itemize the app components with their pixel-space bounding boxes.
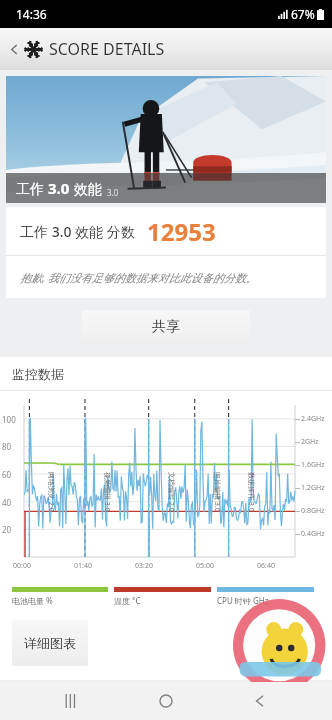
staticText: 效能	[70, 179, 102, 198]
button[interactable]: Home	[144, 682, 188, 720]
button[interactable]: 工作	[6, 76, 326, 203]
button[interactable]: 共享	[82, 310, 250, 343]
staticText: 20	[2, 524, 12, 535]
staticText: 抱歉, 我们没有足够的数据来对比此设备的分数。	[20, 270, 257, 285]
staticText: 数据操作 3.0	[246, 472, 256, 512]
staticText: 00:00	[13, 561, 31, 571]
staticText: 100	[2, 414, 16, 425]
staticText: 05:00	[196, 561, 214, 571]
staticText: 监控数据	[12, 366, 64, 382]
staticText: CPU 时钟 GHz	[217, 595, 269, 606]
staticText: 12953	[147, 215, 216, 248]
staticText: 视频编辑 3.0	[102, 472, 112, 512]
staticText: 工作	[16, 179, 48, 198]
staticText: 2.4GHz	[301, 414, 325, 424]
staticText: 网络浏览 2.0	[46, 472, 56, 512]
staticText: 03:20	[135, 561, 153, 571]
staticText: 温度 °C	[114, 595, 141, 606]
staticText: 14:36	[16, 6, 47, 22]
button[interactable]: Back	[238, 682, 282, 720]
staticText: 3.0	[107, 187, 119, 198]
staticText: 01:40	[74, 561, 92, 571]
staticText: 2GHz	[301, 437, 319, 447]
staticText: 60	[2, 469, 12, 480]
staticText: SCORE DETAILS	[49, 38, 165, 60]
staticText: 0.4GHz	[301, 529, 325, 539]
button[interactable]: 详细图表	[12, 620, 88, 666]
staticText: 1.2GHz	[301, 483, 325, 493]
staticText: 详细图表	[24, 635, 76, 651]
staticText: 3.0	[48, 178, 70, 198]
button[interactable]: Back	[4, 39, 24, 59]
button[interactable]: Recents	[50, 682, 94, 720]
staticText: 0.8GHz	[301, 506, 325, 516]
staticText: 1.6GHz	[301, 460, 325, 470]
staticText: 80	[2, 441, 12, 452]
staticText: 共享	[152, 318, 180, 336]
staticText: 文档编写 2.0	[166, 472, 176, 512]
staticText: 照片编辑 3.0	[212, 472, 222, 512]
staticText: 40	[2, 497, 12, 508]
staticText: 06:40	[257, 561, 275, 571]
staticText: 67%	[291, 6, 315, 22]
staticText: 电池电量 %	[12, 595, 53, 606]
staticText: 工作 3.0 效能 分数	[20, 222, 135, 241]
